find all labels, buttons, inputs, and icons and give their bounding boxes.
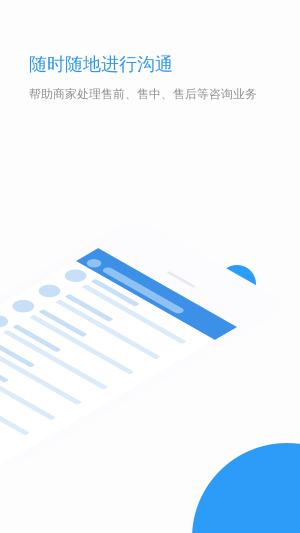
staticText: 随时随地进行沟通 <box>29 53 173 76</box>
staticText: 帮助商家处理售前、售中、售后等咨询业务 <box>29 87 257 102</box>
